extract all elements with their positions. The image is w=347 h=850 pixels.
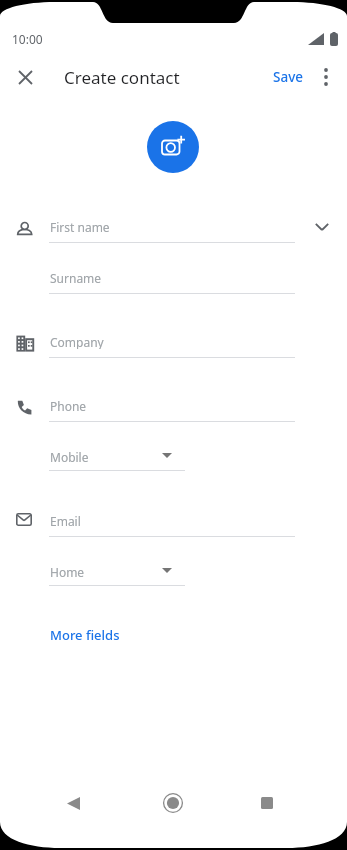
button[interactable]: First name	[50, 219, 110, 234]
button[interactable]	[255, 791, 279, 815]
staticText: First name	[50, 219, 110, 234]
button[interactable]	[314, 65, 338, 89]
button[interactable]: Company	[50, 334, 104, 349]
staticText: Create contact	[64, 66, 180, 88]
staticText: Phone	[50, 398, 87, 413]
staticText: Mobile	[50, 449, 89, 464]
button[interactable]	[13, 65, 37, 89]
button[interactable]	[310, 215, 334, 239]
button[interactable]	[61, 791, 85, 815]
staticText: Company	[50, 334, 104, 349]
button[interactable]	[161, 791, 185, 815]
button[interactable]: Surname	[50, 270, 102, 285]
button[interactable]	[147, 121, 199, 173]
button[interactable]: Phone	[50, 398, 87, 413]
button[interactable]: Save	[266, 66, 310, 88]
staticText: More fields	[50, 626, 120, 644]
button[interactable]: Email	[50, 513, 81, 528]
staticText: 10:00	[12, 31, 43, 47]
staticText: Save	[273, 68, 304, 86]
button[interactable]: Home	[50, 564, 85, 579]
button[interactable]: Mobile	[50, 449, 89, 464]
staticText: Home	[50, 564, 85, 579]
button[interactable]: More fields	[50, 626, 120, 644]
staticText: Surname	[50, 270, 102, 285]
staticText: Email	[50, 513, 81, 528]
